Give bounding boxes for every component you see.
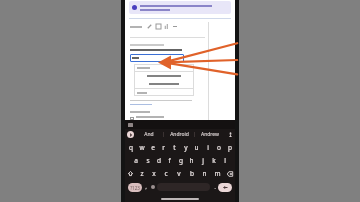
button[interactable]: Android [164,129,194,140]
staticText: j [202,156,204,165]
button[interactable]: u [191,141,202,154]
staticText: a [134,156,138,165]
staticText: f [168,156,171,165]
staticText: s [146,156,150,165]
button[interactable]: h [186,154,197,167]
button[interactable]: t [169,141,180,154]
button[interactable]: Gboard menu [127,131,134,138]
staticText: And [144,131,154,138]
button[interactable]: Shift [125,167,136,180]
button[interactable]: k [208,154,219,167]
staticText: t [173,143,176,152]
button[interactable] [130,54,184,62]
staticText: ?123 [130,185,140,191]
button[interactable]: m [211,167,224,180]
button[interactable]: Voice input [225,129,235,140]
staticText: e [151,143,155,152]
staticText: d [157,156,161,165]
staticText: p [228,143,232,152]
staticText: , [145,184,147,190]
staticText: q [129,143,133,152]
button[interactable]: Andrew [195,129,225,140]
staticText: c [164,169,168,178]
button[interactable] [134,89,194,96]
button[interactable]: f [164,154,175,167]
staticText: Android [170,131,189,138]
button[interactable] [134,80,194,88]
button[interactable]: c [160,167,172,180]
staticText: k [212,156,216,165]
staticText: Andrew [201,131,219,138]
staticText: x [152,169,156,178]
button[interactable]: l [219,154,230,167]
button[interactable]: Emoji [149,180,156,194]
button[interactable]: ?123 [128,183,142,192]
button[interactable]: n [198,167,211,180]
button[interactable] [134,72,194,80]
button[interactable]: i [202,141,213,154]
staticText: i [207,143,209,152]
button[interactable]: q [125,141,136,154]
button[interactable]: a [130,154,142,167]
staticText: . [214,184,216,190]
button[interactable]: w [136,141,147,154]
button[interactable]: g [175,154,186,167]
button[interactable]: r [158,141,169,154]
staticText: l [224,156,226,165]
staticText: w [139,143,145,152]
button[interactable] [130,116,164,120]
button[interactable]: . [211,180,218,194]
button[interactable]: b [185,167,198,180]
button[interactable] [129,1,231,14]
button[interactable]: v [172,167,185,180]
staticText: m [214,169,221,178]
staticText: v [177,169,181,178]
staticText: h [189,156,194,165]
button[interactable]: o [213,141,224,154]
button[interactable]: z [136,167,148,180]
staticText: u [194,143,199,152]
staticText: y [184,143,188,152]
staticText: g [179,156,183,165]
button[interactable]: s [142,154,153,167]
staticText: o [217,143,221,152]
button[interactable]: Backspace [224,167,235,180]
staticText: z [140,169,144,178]
staticText: b [190,169,194,178]
button[interactable]: p [224,141,235,154]
staticText: r [162,143,165,152]
button[interactable]: And [134,129,163,140]
button[interactable]: Enter [218,183,232,192]
button[interactable]: j [197,154,208,167]
staticText: n [202,169,207,178]
button[interactable]: x [148,167,160,180]
button[interactable]: , [142,180,149,194]
button[interactable]: e [147,141,158,154]
button[interactable]: d [153,154,164,167]
button[interactable]: y [180,141,191,154]
